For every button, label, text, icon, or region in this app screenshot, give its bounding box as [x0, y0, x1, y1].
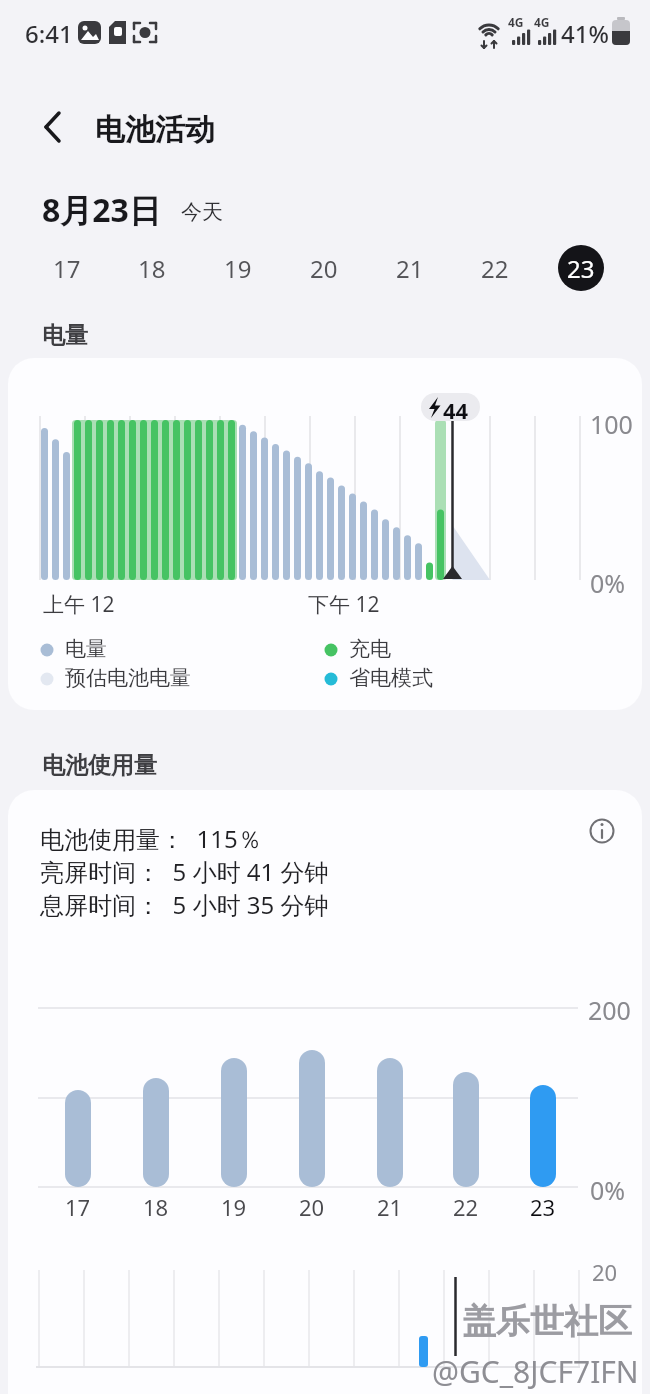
staticText: 23	[567, 252, 595, 285]
staticText: 电量	[65, 636, 107, 662]
staticText: 44	[443, 395, 469, 425]
staticText: 省电模式	[349, 665, 433, 691]
staticText: 20	[592, 1257, 618, 1287]
staticText: 100	[590, 407, 633, 441]
staticText: 8月23日	[42, 188, 161, 232]
staticText: 19	[224, 252, 252, 285]
button[interactable]: 20	[300, 244, 348, 292]
staticText: 17	[65, 1192, 91, 1222]
button[interactable]: 22	[471, 244, 519, 292]
staticText: 21	[377, 1192, 403, 1222]
staticText: 0%	[590, 566, 626, 600]
staticText: 今天	[181, 199, 223, 225]
button[interactable]	[584, 813, 620, 849]
button[interactable]: 19	[214, 244, 262, 292]
staticText: 0%	[590, 1173, 626, 1207]
staticText: 6:41	[25, 17, 73, 50]
staticText: 电池活动	[95, 111, 215, 149]
staticText: 19	[221, 1192, 247, 1222]
button[interactable]: 17	[43, 244, 91, 292]
staticText: 23	[530, 1192, 556, 1222]
staticText: 充电	[349, 636, 391, 662]
button[interactable]: 18	[128, 244, 176, 292]
staticText: 20	[310, 252, 338, 285]
staticText: 电量	[42, 321, 88, 350]
staticText: 预估电池电量	[65, 665, 191, 691]
staticText: 亮屏时间： 5 小时 41 分钟	[40, 855, 329, 888]
staticText: 电池使用量： 115％	[40, 822, 262, 855]
staticText: 4G	[508, 14, 524, 30]
staticText: 200	[588, 993, 631, 1027]
staticText: 上午 12	[43, 590, 115, 619]
staticText: 17	[53, 252, 81, 285]
staticText: 4G	[534, 14, 550, 30]
button[interactable]: 23	[558, 245, 604, 291]
staticText: 下午 12	[308, 590, 380, 619]
staticText: 18	[138, 252, 166, 285]
button[interactable]	[34, 103, 78, 151]
staticText: @GC_8JCF7IFN	[432, 1351, 639, 1392]
staticText: 盖乐世社区	[462, 1300, 632, 1343]
staticText: 41%	[561, 17, 609, 50]
staticText: 息屏时间： 5 小时 35 分钟	[40, 888, 329, 921]
staticText: 21	[396, 252, 424, 285]
staticText: 20	[299, 1192, 325, 1222]
staticText: 22	[453, 1192, 479, 1222]
staticText: 18	[143, 1192, 169, 1222]
staticText: 电池使用量	[42, 751, 157, 780]
button[interactable]: 21	[386, 244, 434, 292]
staticText: 22	[481, 252, 509, 285]
